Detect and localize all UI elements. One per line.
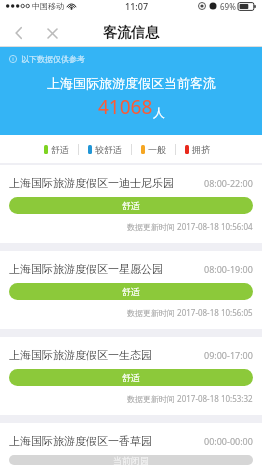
staticText: 69% — [220, 1, 236, 12]
staticText: 当前闭园 — [113, 455, 149, 465]
staticText: 一般 — [148, 144, 166, 155]
staticText: 中国移动 — [32, 1, 64, 11]
button[interactable]: Close — [41, 22, 63, 44]
staticText: 数据更新时间 2017-08-18 10:53:32 — [127, 393, 253, 404]
staticText: 以下数据仅供参考 — [21, 54, 85, 64]
staticText: 00:00-00:00 — [204, 435, 253, 447]
staticText: 拥挤 — [192, 144, 210, 155]
staticText: 09:00-17:00 — [204, 349, 253, 361]
staticText: 41068 — [98, 94, 153, 120]
button[interactable]: Back — [8, 22, 30, 44]
staticText: 人 — [153, 105, 165, 120]
staticText: 08:00-19:00 — [204, 263, 253, 275]
staticText: 上海国际旅游度假区一迪士尼乐园 — [9, 176, 174, 190]
button[interactable]: 上海国际旅游度假区一星愿公园 — [0, 251, 262, 329]
staticText: 数据更新时间 2017-08-18 10:56:05 — [127, 307, 253, 318]
staticText: 11:07 — [125, 0, 149, 12]
staticText: 舒适 — [51, 144, 69, 155]
staticText: 上海国际旅游度假区一香草园 — [9, 434, 152, 448]
staticText: 舒适 — [122, 200, 140, 211]
button[interactable]: 上海国际旅游度假区一香草园 — [0, 423, 262, 465]
staticText: 舒适 — [122, 286, 140, 297]
staticText: 上海国际旅游度假区一生态园 — [9, 348, 152, 362]
staticText: 客流信息 — [103, 24, 159, 42]
button[interactable]: 上海国际旅游度假区一迪士尼乐园 — [0, 165, 262, 243]
staticText: 08:00-22:00 — [204, 177, 253, 189]
staticText: 舒适 — [122, 372, 140, 383]
staticText: 上海国际旅游度假区一星愿公园 — [9, 262, 163, 276]
button[interactable]: 上海国际旅游度假区一生态园 — [0, 337, 262, 415]
staticText: 上海国际旅游度假区当前客流 — [47, 75, 216, 91]
staticText: 较舒适 — [95, 144, 122, 155]
staticText: 数据更新时间 2017-08-18 10:56:04 — [127, 221, 253, 232]
